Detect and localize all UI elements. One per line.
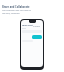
button[interactable]: [32, 35, 42, 39]
staticText: Share and Collaborate: [2, 5, 30, 8]
staticText: 4 online now: [33, 25, 42, 27]
staticText: Team Chat: [22, 24, 33, 27]
staticText: Work together with your team in: [2, 9, 31, 12]
button[interactable]: Team Chat: [22, 24, 42, 27]
staticText: real time, anywhere: [2, 12, 20, 15]
